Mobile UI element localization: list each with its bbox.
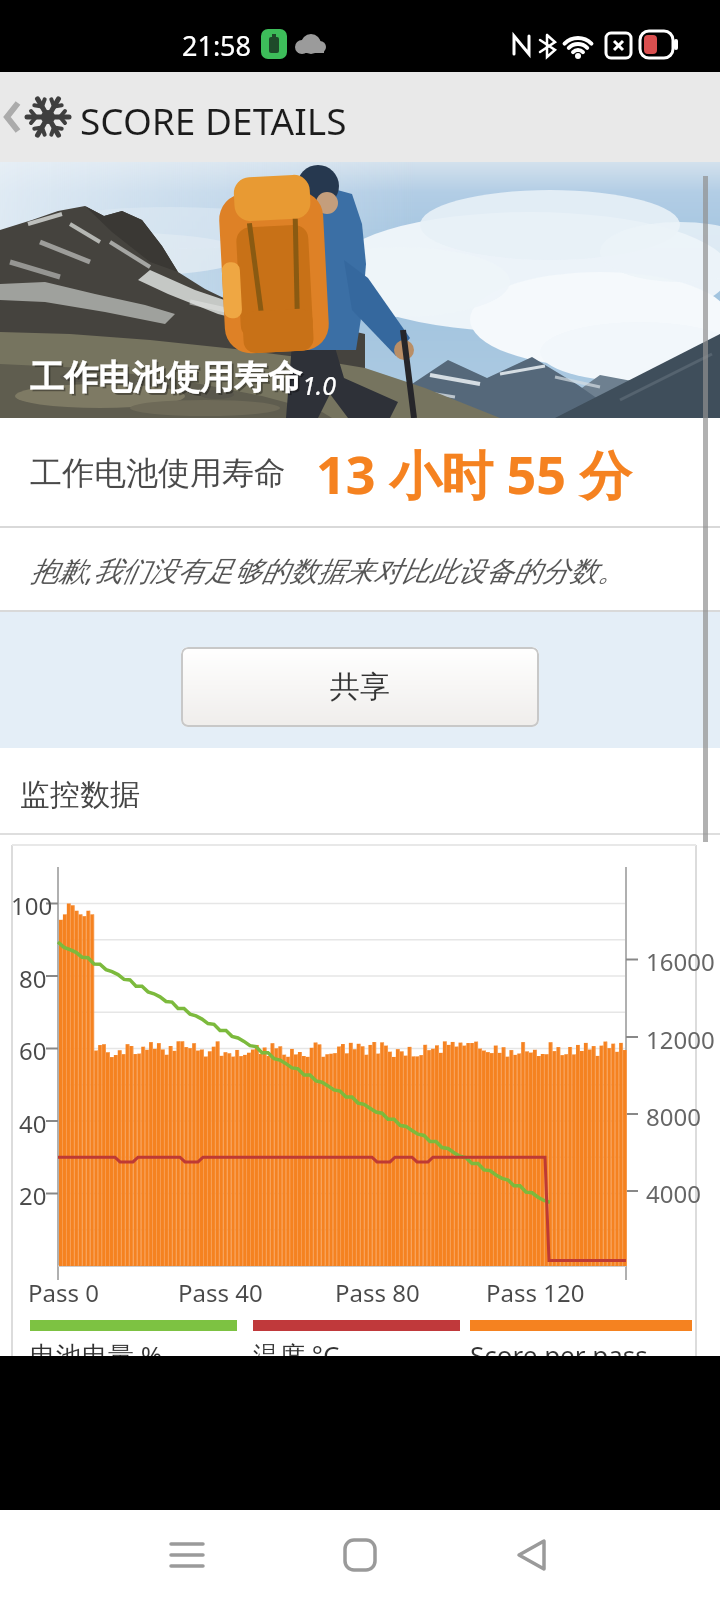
staticText: Score per pass xyxy=(470,1337,648,1372)
button[interactable] xyxy=(0,72,76,162)
button[interactable]: 共享 xyxy=(181,647,539,727)
staticText: 工作电池使用寿命 xyxy=(32,358,304,401)
staticText: 100 xyxy=(11,889,53,922)
staticText: 60 xyxy=(19,1034,47,1067)
staticText: Pass 40 xyxy=(178,1276,263,1309)
staticText: 8000 xyxy=(646,1100,701,1133)
staticText: Pass 120 xyxy=(486,1276,585,1309)
staticText: 40 xyxy=(19,1107,47,1140)
staticText: 12000 xyxy=(646,1023,715,1056)
staticText: 13 小时 55 分 xyxy=(316,438,632,509)
staticText: 抱歉,我们没有足够的数据来对比此设备的分数。 xyxy=(30,551,626,589)
button[interactable] xyxy=(320,1515,400,1595)
staticText: 共享 xyxy=(330,668,390,706)
staticText: 21:58 xyxy=(182,27,252,64)
staticText: 16000 xyxy=(646,945,715,978)
staticText: 温度 °C xyxy=(253,1337,340,1373)
staticText: SCORE DETAILS xyxy=(80,95,347,145)
staticText: 4000 xyxy=(646,1177,701,1210)
staticText: 80 xyxy=(19,962,47,995)
button[interactable] xyxy=(147,1515,227,1595)
staticText: 工作电池使用寿命 xyxy=(30,453,286,493)
staticText: 监控数据 xyxy=(20,776,140,814)
staticText: 1.0 xyxy=(302,368,336,402)
staticText: 工作电池使用寿命 xyxy=(30,356,302,399)
button[interactable] xyxy=(492,1515,572,1595)
staticText: Pass 0 xyxy=(28,1276,99,1309)
staticText: Pass 80 xyxy=(335,1276,420,1309)
staticText: 电池电量 % xyxy=(30,1337,163,1373)
staticText: 20 xyxy=(19,1179,47,1212)
